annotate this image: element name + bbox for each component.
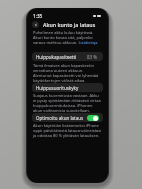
button[interactable]: Huippusuorituskyky	[32, 83, 103, 92]
staticText: Puhelimen akku kuluu käytössä. Akun kunt…	[33, 30, 102, 45]
staticText: Suojaus kuormitusta vastaan. Akku ei pys…	[33, 93, 102, 113]
staticText: 1:35	[33, 13, 43, 18]
button[interactable]: Optimoitu akun lataus	[32, 113, 103, 122]
staticText: Huippukapasiteetti	[36, 54, 77, 60]
staticText: Akun kunto ja lataus	[43, 21, 96, 28]
staticText: Huippusuorituskyky	[36, 85, 79, 91]
staticText: Tämä ilmaisee akun kapasiteetin verrattu…	[33, 63, 102, 83]
staticText: Optimoitu akun lataus	[36, 115, 84, 121]
staticText: 83 %	[87, 54, 98, 60]
button[interactable]: Optimoitu akun lataus	[87, 115, 99, 121]
button[interactable]: Huippukapasiteetti	[32, 52, 103, 61]
staticText: Akun käyttöiän lisäämiseksi iPhone oppii…	[33, 123, 102, 138]
button[interactable]: Back	[32, 21, 39, 28]
